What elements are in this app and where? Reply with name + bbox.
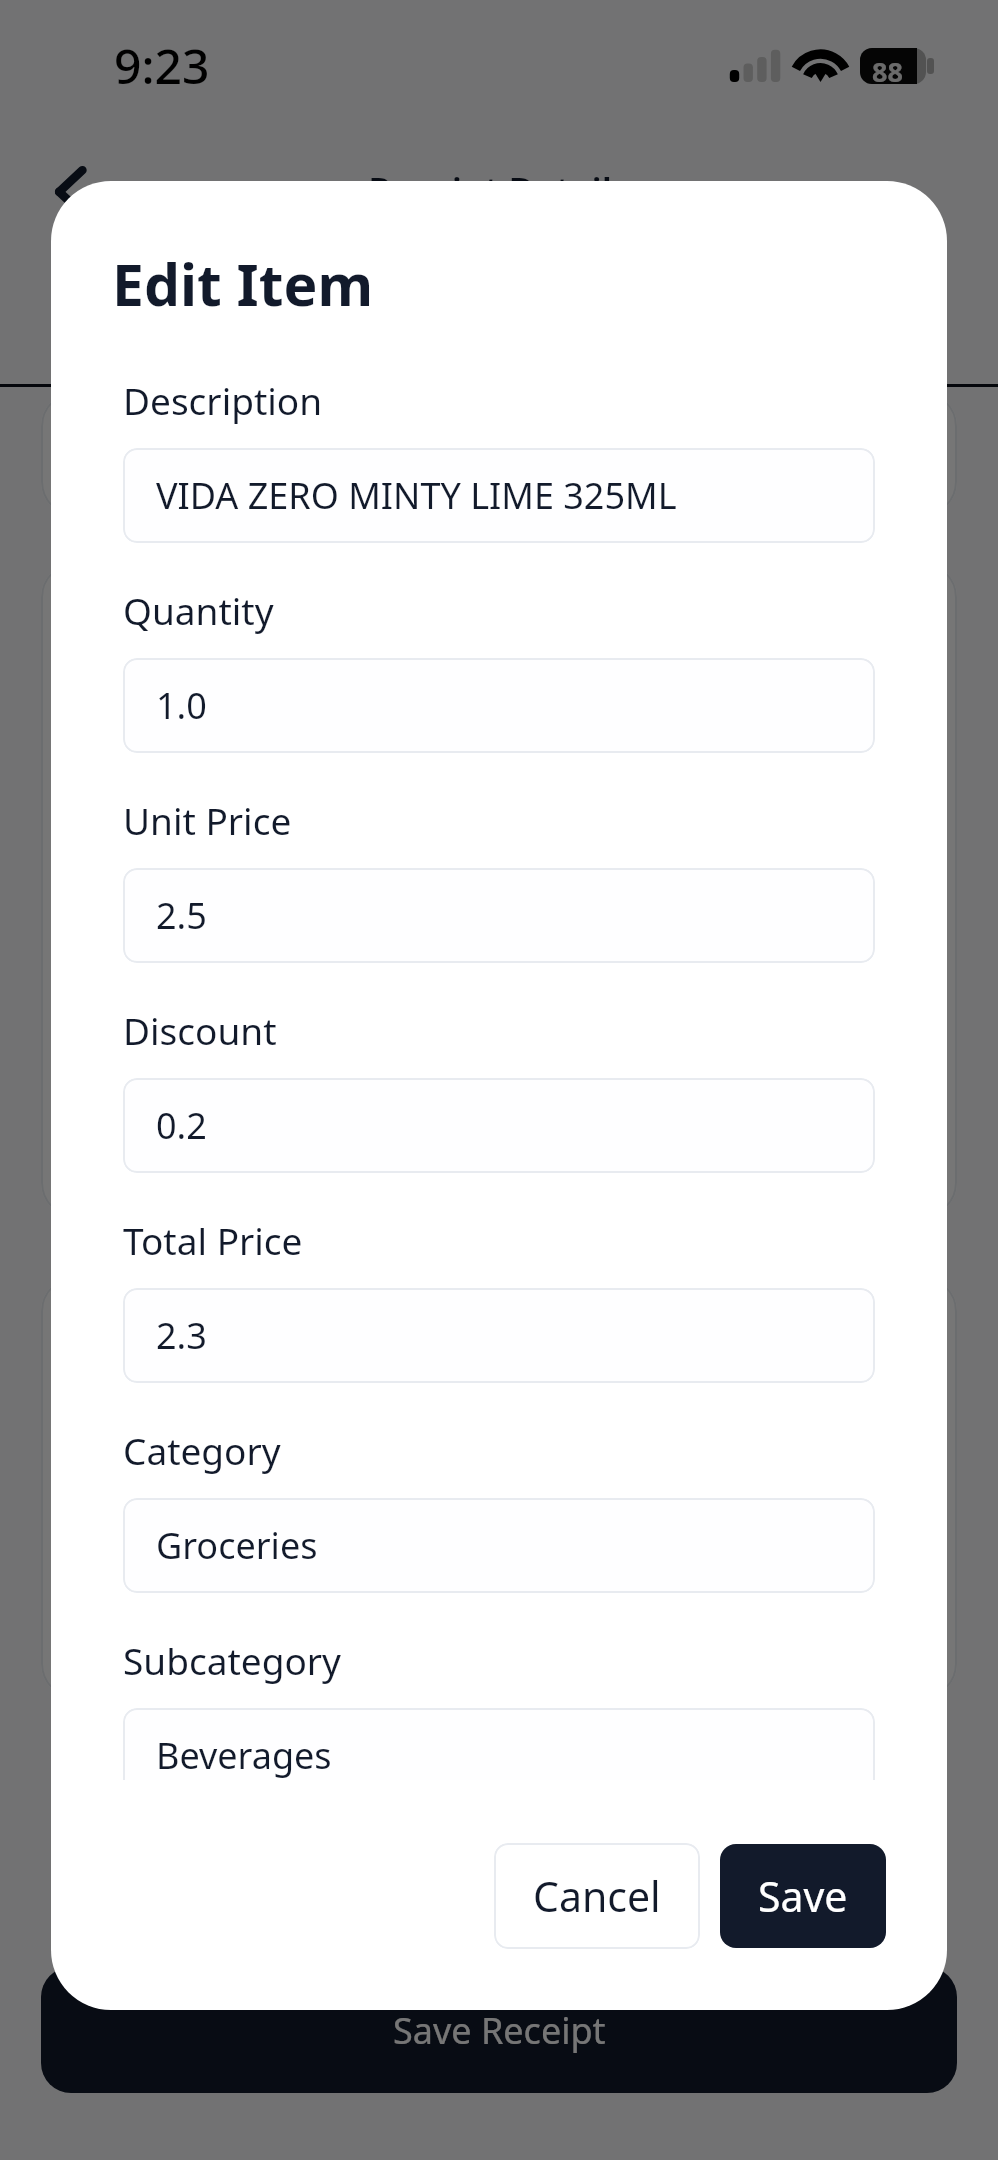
staticText: 9:23 [114,33,210,98]
staticText: Save Receipt [393,2006,606,2055]
staticText: VIDA ZERO MINTY LIME 325ML [156,471,677,520]
staticText: Discount [123,1005,277,1055]
staticText: Quantity [123,585,274,635]
button[interactable]: Back [35,146,107,238]
staticText: Beverages [156,1731,332,1780]
staticText: Total Price [123,1215,303,1265]
staticText: 88 [872,53,903,90]
staticText: 2.3 [156,1311,207,1360]
button[interactable]: Save Receipt [41,1967,957,2093]
button[interactable]: Groceries [123,1498,875,1593]
staticText: Receipt Details [0,166,998,215]
button[interactable]: 1.0 [123,658,875,753]
button[interactable]: Beverages [123,1708,875,1780]
staticText: Save [758,1868,848,1924]
staticText: Category [123,1425,281,1475]
staticText: Unit Price [123,795,292,845]
staticText: Subcategory [123,1635,341,1685]
staticText: Cancel [533,1868,661,1924]
staticText: 2.5 [156,891,207,940]
button[interactable]: VIDA ZERO MINTY LIME 325ML [123,448,875,543]
staticText: Description [123,375,323,425]
button[interactable]: 0.2 [123,1078,875,1173]
staticText: Edit Item [112,245,374,323]
staticText: 1.0 [156,681,207,730]
staticText: Groceries [156,1521,318,1570]
button[interactable]: 2.5 [123,868,875,963]
staticText: 0.2 [156,1101,207,1150]
button[interactable]: Cancel [494,1843,700,1949]
button[interactable]: Save [720,1844,886,1948]
button[interactable]: 2.3 [123,1288,875,1383]
